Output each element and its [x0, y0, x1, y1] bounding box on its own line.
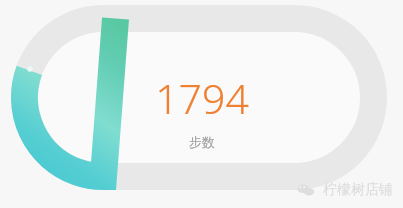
staticText: 柠檬树店铺: [323, 181, 393, 199]
other: WeChat: [297, 180, 316, 199]
button[interactable]: Steps 1794: [0, 0, 403, 208]
staticText: 步数: [189, 134, 215, 150]
staticText: 1794: [155, 70, 249, 126]
